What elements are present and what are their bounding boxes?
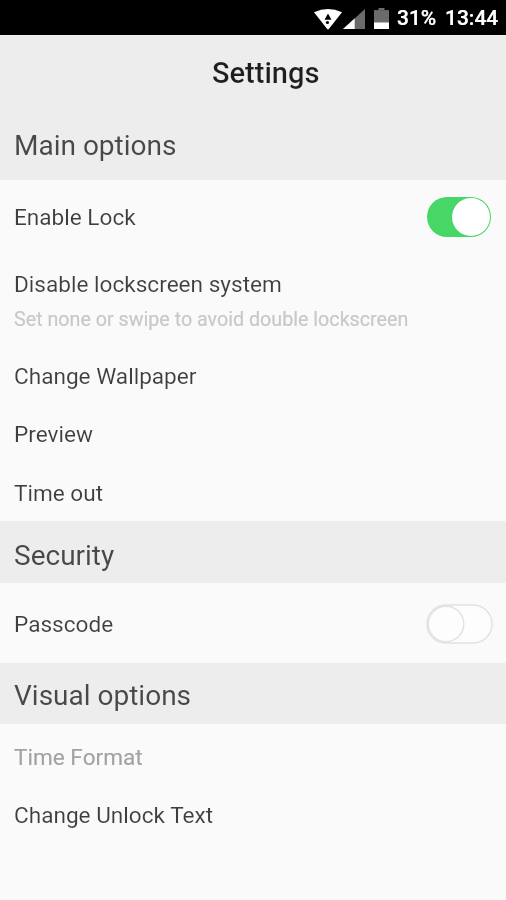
button[interactable]: Change Unlock Text — [0, 790, 506, 840]
button[interactable]: Passcode toggle, off — [427, 605, 492, 643]
button[interactable]: Enable Lock — [0, 180, 506, 254]
staticText: Enable Lock — [14, 204, 136, 230]
staticText: Main options — [14, 129, 177, 162]
staticText: Disable lockscreen system — [14, 271, 282, 297]
button[interactable]: Time Format — [0, 724, 506, 790]
button[interactable]: Preview — [0, 404, 506, 463]
button[interactable]: Change Wallpaper — [0, 347, 506, 405]
staticText: Time Format — [14, 744, 143, 770]
staticText: Change Wallpaper — [14, 363, 197, 389]
staticText: Set none or swipe to avoid double locksc… — [14, 308, 409, 331]
staticText: Passcode — [14, 611, 114, 637]
staticText: Security — [14, 539, 115, 572]
button[interactable]: Time out — [0, 464, 506, 522]
staticText: Preview — [14, 421, 93, 447]
staticText: Visual options — [14, 679, 192, 712]
button[interactable]: Disable lockscreen system — [0, 254, 506, 346]
staticText: Settings — [212, 56, 320, 90]
staticText: Change Unlock Text — [14, 802, 214, 828]
button[interactable]: Passcode — [0, 584, 506, 664]
button[interactable]: Enable Lock toggle, on — [427, 197, 491, 237]
staticText: 31% — [397, 6, 437, 31]
staticText: Time out — [14, 480, 104, 506]
staticText: 13:44 — [445, 6, 499, 31]
